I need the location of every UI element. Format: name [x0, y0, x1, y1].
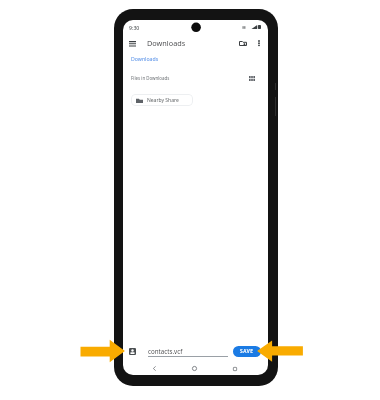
button[interactable]: More options — [250, 34, 268, 52]
button[interactable]: Downloads — [128, 53, 162, 63]
button[interactable]: Open navigation menu — [123, 34, 141, 52]
staticText: Nearby Share — [147, 97, 179, 104]
button[interactable]: Back — [148, 362, 161, 375]
staticText: Downloads — [131, 55, 159, 62]
button[interactable]: Recent apps — [228, 362, 241, 375]
button[interactable]: Switch to grid view — [245, 72, 258, 85]
staticText: Files in Downloads — [131, 75, 170, 81]
staticText: Downloads — [147, 38, 186, 48]
button[interactable]: Create new folder — [234, 34, 252, 52]
button[interactable]: Contact file — [124, 343, 140, 359]
button[interactable]: Home — [188, 362, 201, 375]
staticText: 9:30 — [129, 24, 140, 31]
staticText: SAVE — [240, 348, 254, 355]
button[interactable]: Nearby Share — [131, 94, 193, 106]
button[interactable]: SAVE — [233, 346, 261, 357]
staticText: contacts.vcf — [148, 347, 183, 355]
